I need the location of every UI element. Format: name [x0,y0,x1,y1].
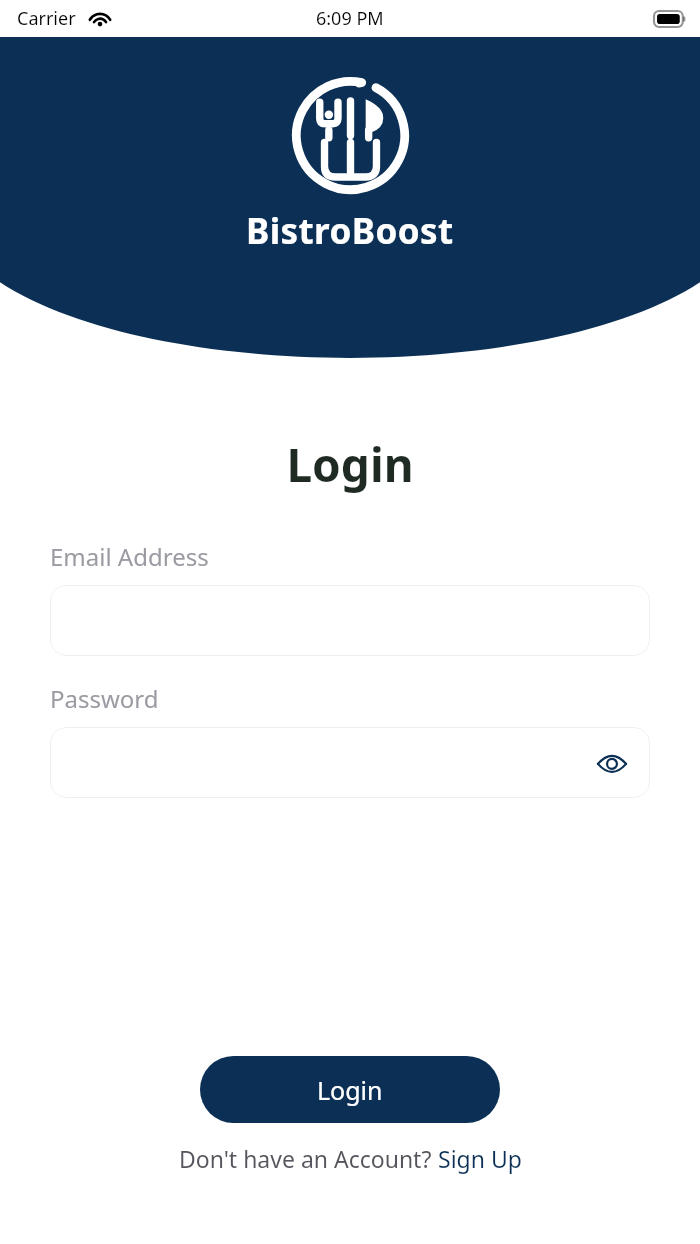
button[interactable]: Sign Up [438,1143,522,1174]
staticText: Email Address [50,540,209,573]
staticText: Carrier [17,6,76,31]
staticText: BistroBoost [246,207,454,255]
staticText: Sign Up [438,1143,522,1174]
staticText: Login [317,1073,383,1107]
button[interactable]: Show password [590,741,634,785]
staticText: 6:09 PM [316,6,384,31]
staticText: Password [50,682,159,715]
staticText: Login [0,433,700,496]
staticText: Don't have an Account? [179,1143,438,1174]
button[interactable]: Password [50,727,650,798]
button[interactable]: Login [200,1056,500,1123]
